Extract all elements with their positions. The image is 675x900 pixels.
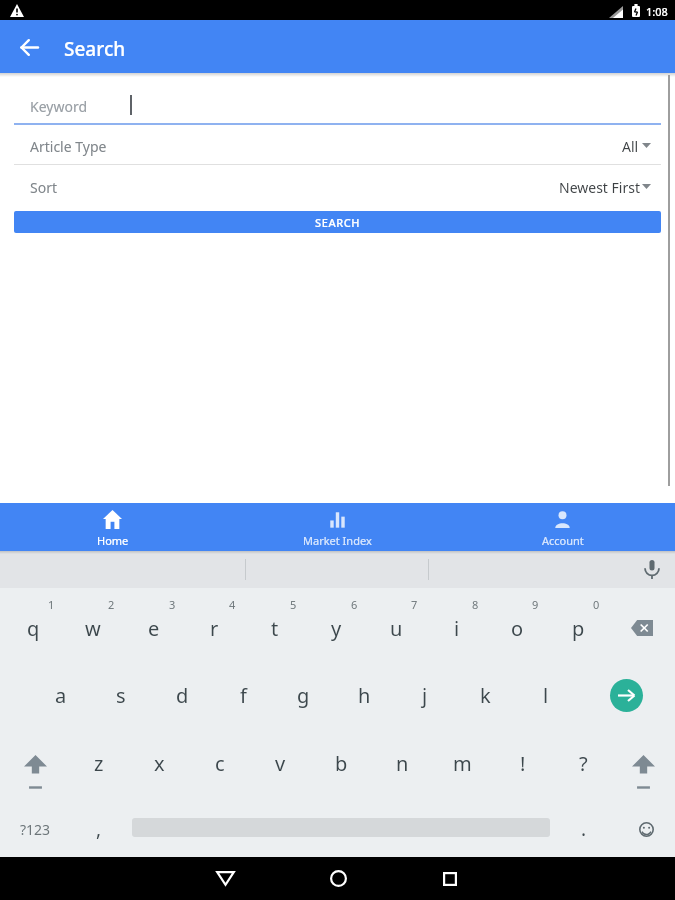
button[interactable] bbox=[622, 805, 670, 853]
staticText: , bbox=[96, 816, 102, 842]
button[interactable] bbox=[602, 671, 650, 719]
staticText: y bbox=[331, 615, 342, 642]
staticText: Home bbox=[97, 533, 129, 548]
button[interactable] bbox=[9, 739, 61, 803]
button[interactable]: Sort bbox=[0, 165, 675, 205]
staticText: f bbox=[240, 682, 247, 709]
button[interactable]: d bbox=[154, 667, 210, 723]
button[interactable]: , bbox=[71, 801, 127, 857]
button[interactable]: f bbox=[215, 667, 271, 723]
staticText: j bbox=[422, 682, 428, 709]
staticText: Search bbox=[64, 36, 126, 62]
staticText: a bbox=[55, 682, 67, 709]
button[interactable]: o bbox=[489, 600, 545, 656]
staticText: l bbox=[543, 682, 549, 709]
button[interactable]: v bbox=[252, 735, 308, 791]
staticText: m bbox=[453, 750, 472, 777]
staticText: c bbox=[215, 750, 225, 777]
staticText: Market Index bbox=[303, 533, 372, 548]
staticText: g bbox=[297, 682, 310, 709]
button[interactable]: u bbox=[368, 600, 424, 656]
staticText: All bbox=[622, 137, 639, 156]
staticText: 9 bbox=[532, 597, 539, 612]
button[interactable]: j bbox=[397, 667, 453, 723]
button[interactable]: ? bbox=[555, 735, 611, 791]
button[interactable]: t bbox=[247, 600, 303, 656]
staticText: x bbox=[154, 750, 165, 777]
staticText: o bbox=[511, 615, 524, 642]
button[interactable]: q bbox=[5, 600, 61, 656]
button[interactable]: Article Type bbox=[0, 125, 675, 164]
button[interactable]: h bbox=[336, 667, 392, 723]
button[interactable]: c bbox=[192, 735, 248, 791]
staticText: 3 bbox=[169, 597, 176, 612]
staticText: . bbox=[581, 816, 587, 842]
button[interactable] bbox=[316, 857, 360, 900]
staticText: z bbox=[94, 750, 104, 777]
button[interactable] bbox=[203, 857, 247, 900]
staticText: ?123 bbox=[20, 820, 51, 839]
staticText: Account bbox=[542, 533, 584, 548]
staticText: d bbox=[176, 682, 189, 709]
staticText: b bbox=[335, 750, 348, 777]
button[interactable]: Home bbox=[0, 503, 225, 551]
button[interactable]: b bbox=[313, 735, 369, 791]
button[interactable]: e bbox=[126, 600, 182, 656]
staticText: Newest First bbox=[559, 178, 640, 197]
staticText: SEARCH bbox=[315, 215, 361, 230]
button[interactable]: Market Index bbox=[225, 503, 450, 551]
staticText: 8 bbox=[472, 597, 479, 612]
staticText: 1 bbox=[48, 597, 55, 612]
staticText: ! bbox=[520, 750, 526, 777]
button[interactable] bbox=[428, 857, 472, 900]
button[interactable]: z bbox=[71, 735, 127, 791]
staticText: Keyword bbox=[30, 97, 88, 116]
button[interactable]: n bbox=[374, 735, 430, 791]
button[interactable]: ?123 bbox=[7, 801, 63, 857]
staticText: 6 bbox=[351, 597, 358, 612]
staticText: p bbox=[572, 615, 585, 642]
staticText: 1:08 bbox=[646, 4, 668, 19]
button[interactable]: i bbox=[429, 600, 485, 656]
button[interactable]: s bbox=[93, 667, 149, 723]
staticText: Article Type bbox=[30, 137, 107, 156]
staticText: 5 bbox=[290, 597, 297, 612]
staticText: 2 bbox=[108, 597, 115, 612]
staticText: e bbox=[148, 615, 160, 642]
button[interactable]: x bbox=[131, 735, 187, 791]
staticText: t bbox=[271, 615, 279, 642]
button[interactable]: Account bbox=[450, 503, 675, 551]
staticText: w bbox=[85, 615, 101, 642]
button[interactable]: p bbox=[550, 600, 606, 656]
button[interactable]: m bbox=[434, 735, 490, 791]
button[interactable]: SEARCH bbox=[14, 211, 661, 233]
button[interactable]: a bbox=[33, 667, 89, 723]
button[interactable] bbox=[617, 739, 669, 803]
staticText: q bbox=[27, 615, 40, 642]
button[interactable]: k bbox=[457, 667, 513, 723]
button[interactable] bbox=[9, 27, 49, 67]
staticText: 7 bbox=[411, 597, 418, 612]
button[interactable]: ! bbox=[495, 735, 551, 791]
staticText: s bbox=[116, 682, 126, 709]
staticText: v bbox=[275, 750, 286, 777]
button[interactable] bbox=[614, 600, 670, 656]
staticText: 0 bbox=[593, 597, 600, 612]
staticText: h bbox=[358, 682, 371, 709]
staticText: ? bbox=[579, 750, 588, 777]
button[interactable]: y bbox=[308, 600, 364, 656]
button[interactable]: g bbox=[275, 667, 331, 723]
staticText: i bbox=[454, 615, 460, 642]
button[interactable]: l bbox=[518, 667, 574, 723]
button[interactable]: r bbox=[186, 600, 242, 656]
button[interactable]: w bbox=[65, 600, 121, 656]
staticText: k bbox=[480, 682, 491, 709]
staticText: 4 bbox=[229, 597, 236, 612]
staticText: n bbox=[396, 750, 409, 777]
button[interactable]: . bbox=[556, 801, 612, 857]
staticText: r bbox=[210, 615, 219, 642]
button[interactable] bbox=[645, 560, 659, 580]
staticText: u bbox=[390, 615, 403, 642]
staticText: Sort bbox=[30, 178, 57, 197]
